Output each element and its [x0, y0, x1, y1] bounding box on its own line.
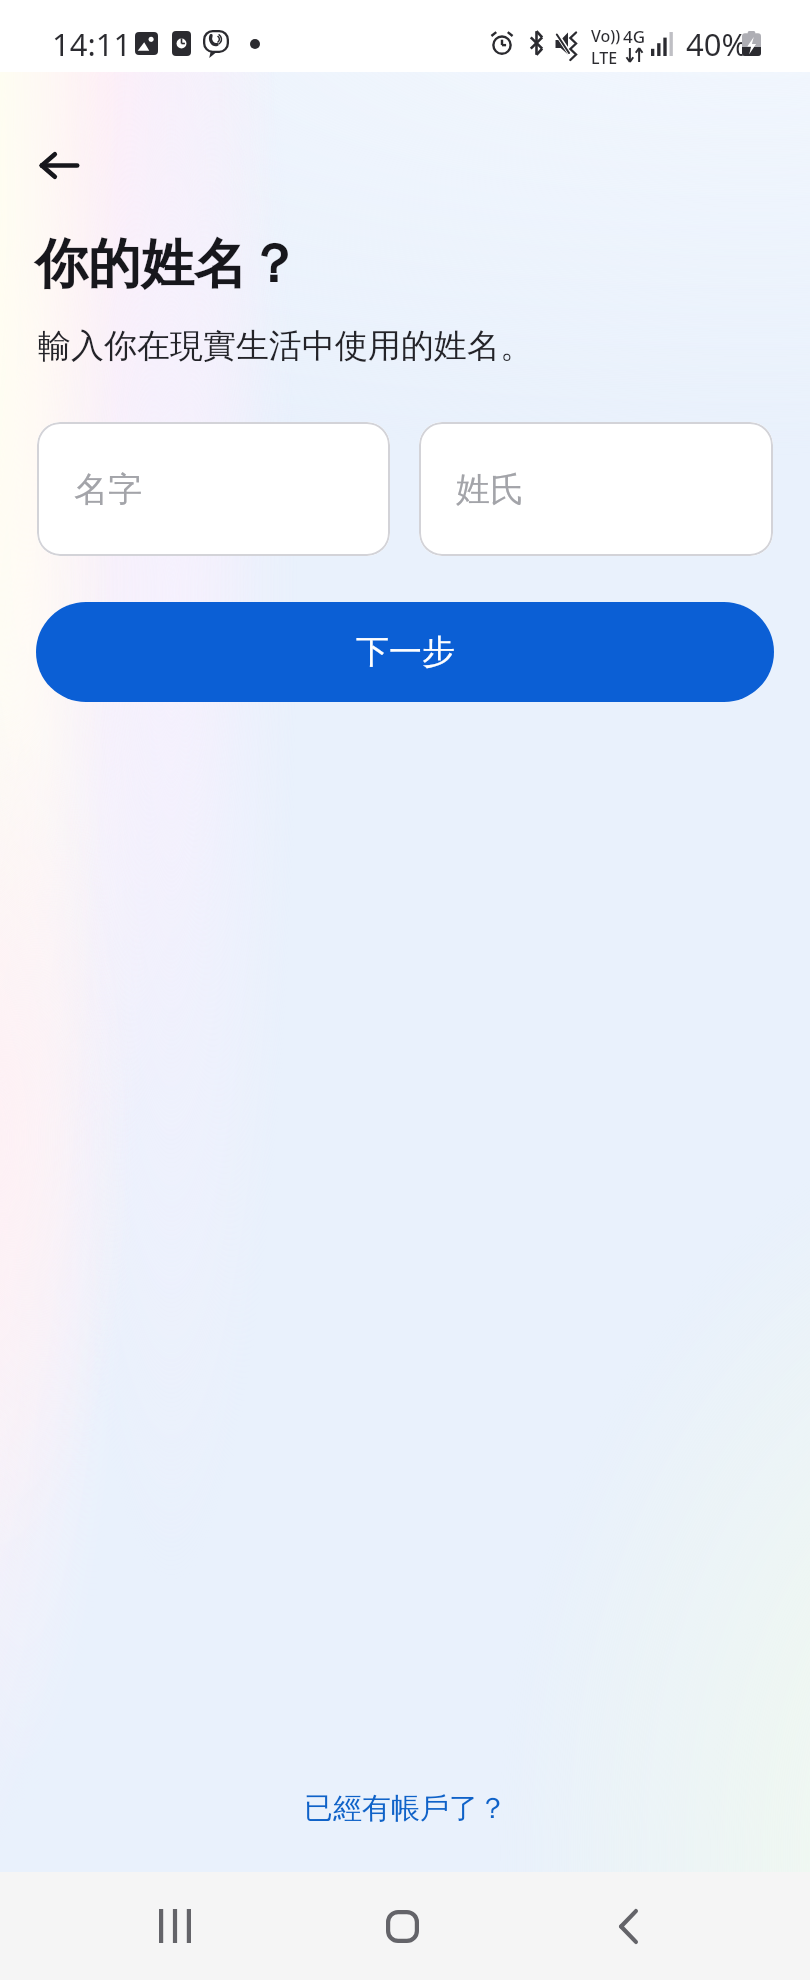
- staticText: 姓氏: [456, 468, 524, 511]
- button[interactable]: 下一步: [36, 602, 774, 702]
- button[interactable]: 名字: [37, 422, 390, 556]
- button[interactable]: 已經有帳戶了？: [288, 1776, 523, 1841]
- staticText: 輸入你在現實生活中使用的姓名。: [38, 325, 533, 367]
- staticText: 14:11: [52, 23, 132, 65]
- staticText: 4G: [623, 25, 646, 48]
- button[interactable]: Back: [573, 1876, 683, 1976]
- staticText: 已經有帳戶了？: [304, 1790, 507, 1827]
- staticText: 40%: [686, 23, 748, 65]
- button[interactable]: Home: [347, 1876, 457, 1976]
- button[interactable]: Recent apps: [120, 1876, 230, 1976]
- staticText: LTE: [591, 47, 618, 69]
- staticText: 名字: [74, 468, 142, 511]
- button[interactable]: 姓氏: [419, 422, 773, 556]
- staticText: 你的姓名？: [35, 231, 300, 298]
- staticText: 下一步: [356, 631, 455, 673]
- button[interactable]: Back: [22, 128, 96, 202]
- staticText: Vo)): [591, 25, 621, 47]
